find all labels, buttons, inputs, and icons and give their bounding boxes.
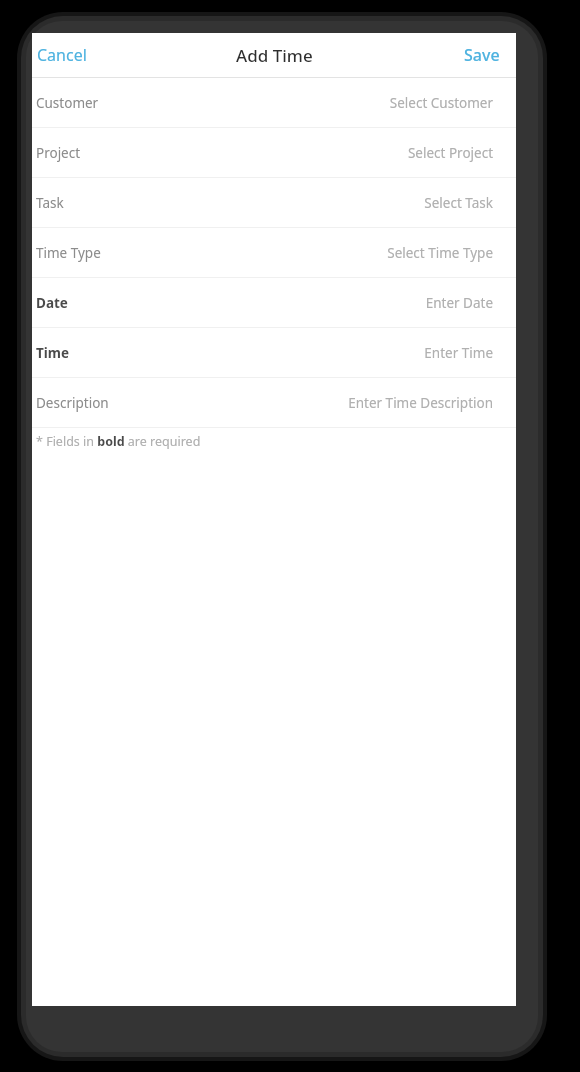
staticText: Save [464, 44, 500, 66]
staticText: * Fields in bold are required [36, 433, 201, 450]
button[interactable]: Cancel [32, 37, 99, 73]
staticText: Select Customer [389, 94, 493, 112]
staticText: Select Project [407, 144, 493, 162]
staticText: Enter Time [424, 344, 493, 362]
button[interactable]: Project [32, 128, 516, 178]
staticText: Project [36, 144, 81, 162]
staticText: Enter Date [425, 294, 493, 312]
staticText: Time [36, 344, 70, 362]
button[interactable]: Save [452, 37, 516, 73]
staticText: Enter Time Description [348, 394, 493, 412]
button[interactable]: Date [32, 278, 516, 328]
button[interactable]: Time Type [32, 228, 516, 278]
staticText: Time Type [36, 244, 101, 262]
staticText: Date [36, 294, 68, 312]
staticText: Select Task [424, 194, 493, 212]
staticText: Cancel [37, 44, 87, 66]
staticText: Task [36, 194, 64, 212]
button[interactable]: Time [32, 328, 516, 378]
staticText: Add Time [236, 44, 313, 67]
button[interactable]: Description [32, 378, 516, 428]
staticText: Customer [36, 94, 99, 112]
staticText: Description [36, 394, 109, 412]
button[interactable]: Task [32, 178, 516, 228]
staticText: Select Time Type [387, 244, 493, 262]
button[interactable]: Customer [32, 78, 516, 128]
